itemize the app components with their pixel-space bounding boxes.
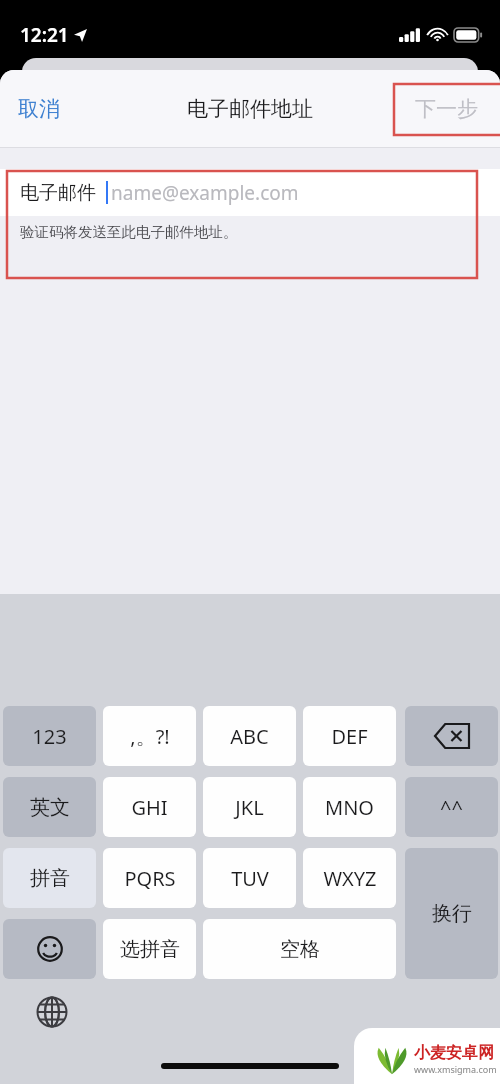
staticText: 拼音 [30,866,70,891]
button[interactable]: MNO [303,777,396,837]
staticText: 123 [32,723,67,750]
staticText: PQRS [124,865,176,892]
staticText: 12:21 [20,22,69,48]
staticText: ,。?! [130,723,170,750]
button[interactable]: 选拼音 [103,919,196,979]
button[interactable]: JKL [203,777,296,837]
staticText: ABC [230,723,269,750]
staticText: name@example.com [111,180,299,206]
button[interactable]: Change keyboard [34,994,70,1030]
staticText: DEF [331,723,368,750]
staticText: TUV [231,865,269,892]
staticText: 小麦安卓网 [414,1043,494,1063]
button[interactable]: TUV [203,848,296,908]
button[interactable]: 123 [3,706,96,766]
staticText: 换行 [432,901,472,926]
button[interactable]: 空格 [203,919,396,979]
staticText: www.xmsigma.com [414,1063,497,1075]
button[interactable]: 换行 [405,848,498,979]
button[interactable]: PQRS [103,848,196,908]
button[interactable]: DEF [303,706,396,766]
button[interactable]: GHI [103,777,196,837]
button[interactable]: ABC [203,706,296,766]
staticText: MNO [325,794,374,821]
button[interactable]: Emoji [3,919,96,979]
staticText: WXYZ [323,865,377,892]
button[interactable]: Delete [405,706,498,766]
button[interactable]: 下一步 [393,86,500,132]
button[interactable]: 拼音 [3,848,96,908]
staticText: JKL [235,794,264,821]
staticText: ^^ [440,794,463,821]
button[interactable]: ,。?! [103,706,196,766]
staticText: 电子邮件 [20,181,96,205]
button[interactable]: ^^ [405,777,498,837]
staticText: 下一步 [415,96,478,122]
staticText: 英文 [30,795,70,820]
button[interactable]: 取消 [0,86,78,132]
staticText: GHI [131,794,168,821]
staticText: 验证码将发送至此电子邮件地址。 [20,223,238,241]
staticText: 取消 [18,96,60,122]
staticText: 空格 [280,937,320,962]
button[interactable]: 电子邮件 [0,169,500,216]
button[interactable]: WXYZ [303,848,396,908]
staticText: 选拼音 [120,937,180,962]
staticText: 电子邮件地址 [187,96,313,122]
button[interactable]: 英文 [3,777,96,837]
